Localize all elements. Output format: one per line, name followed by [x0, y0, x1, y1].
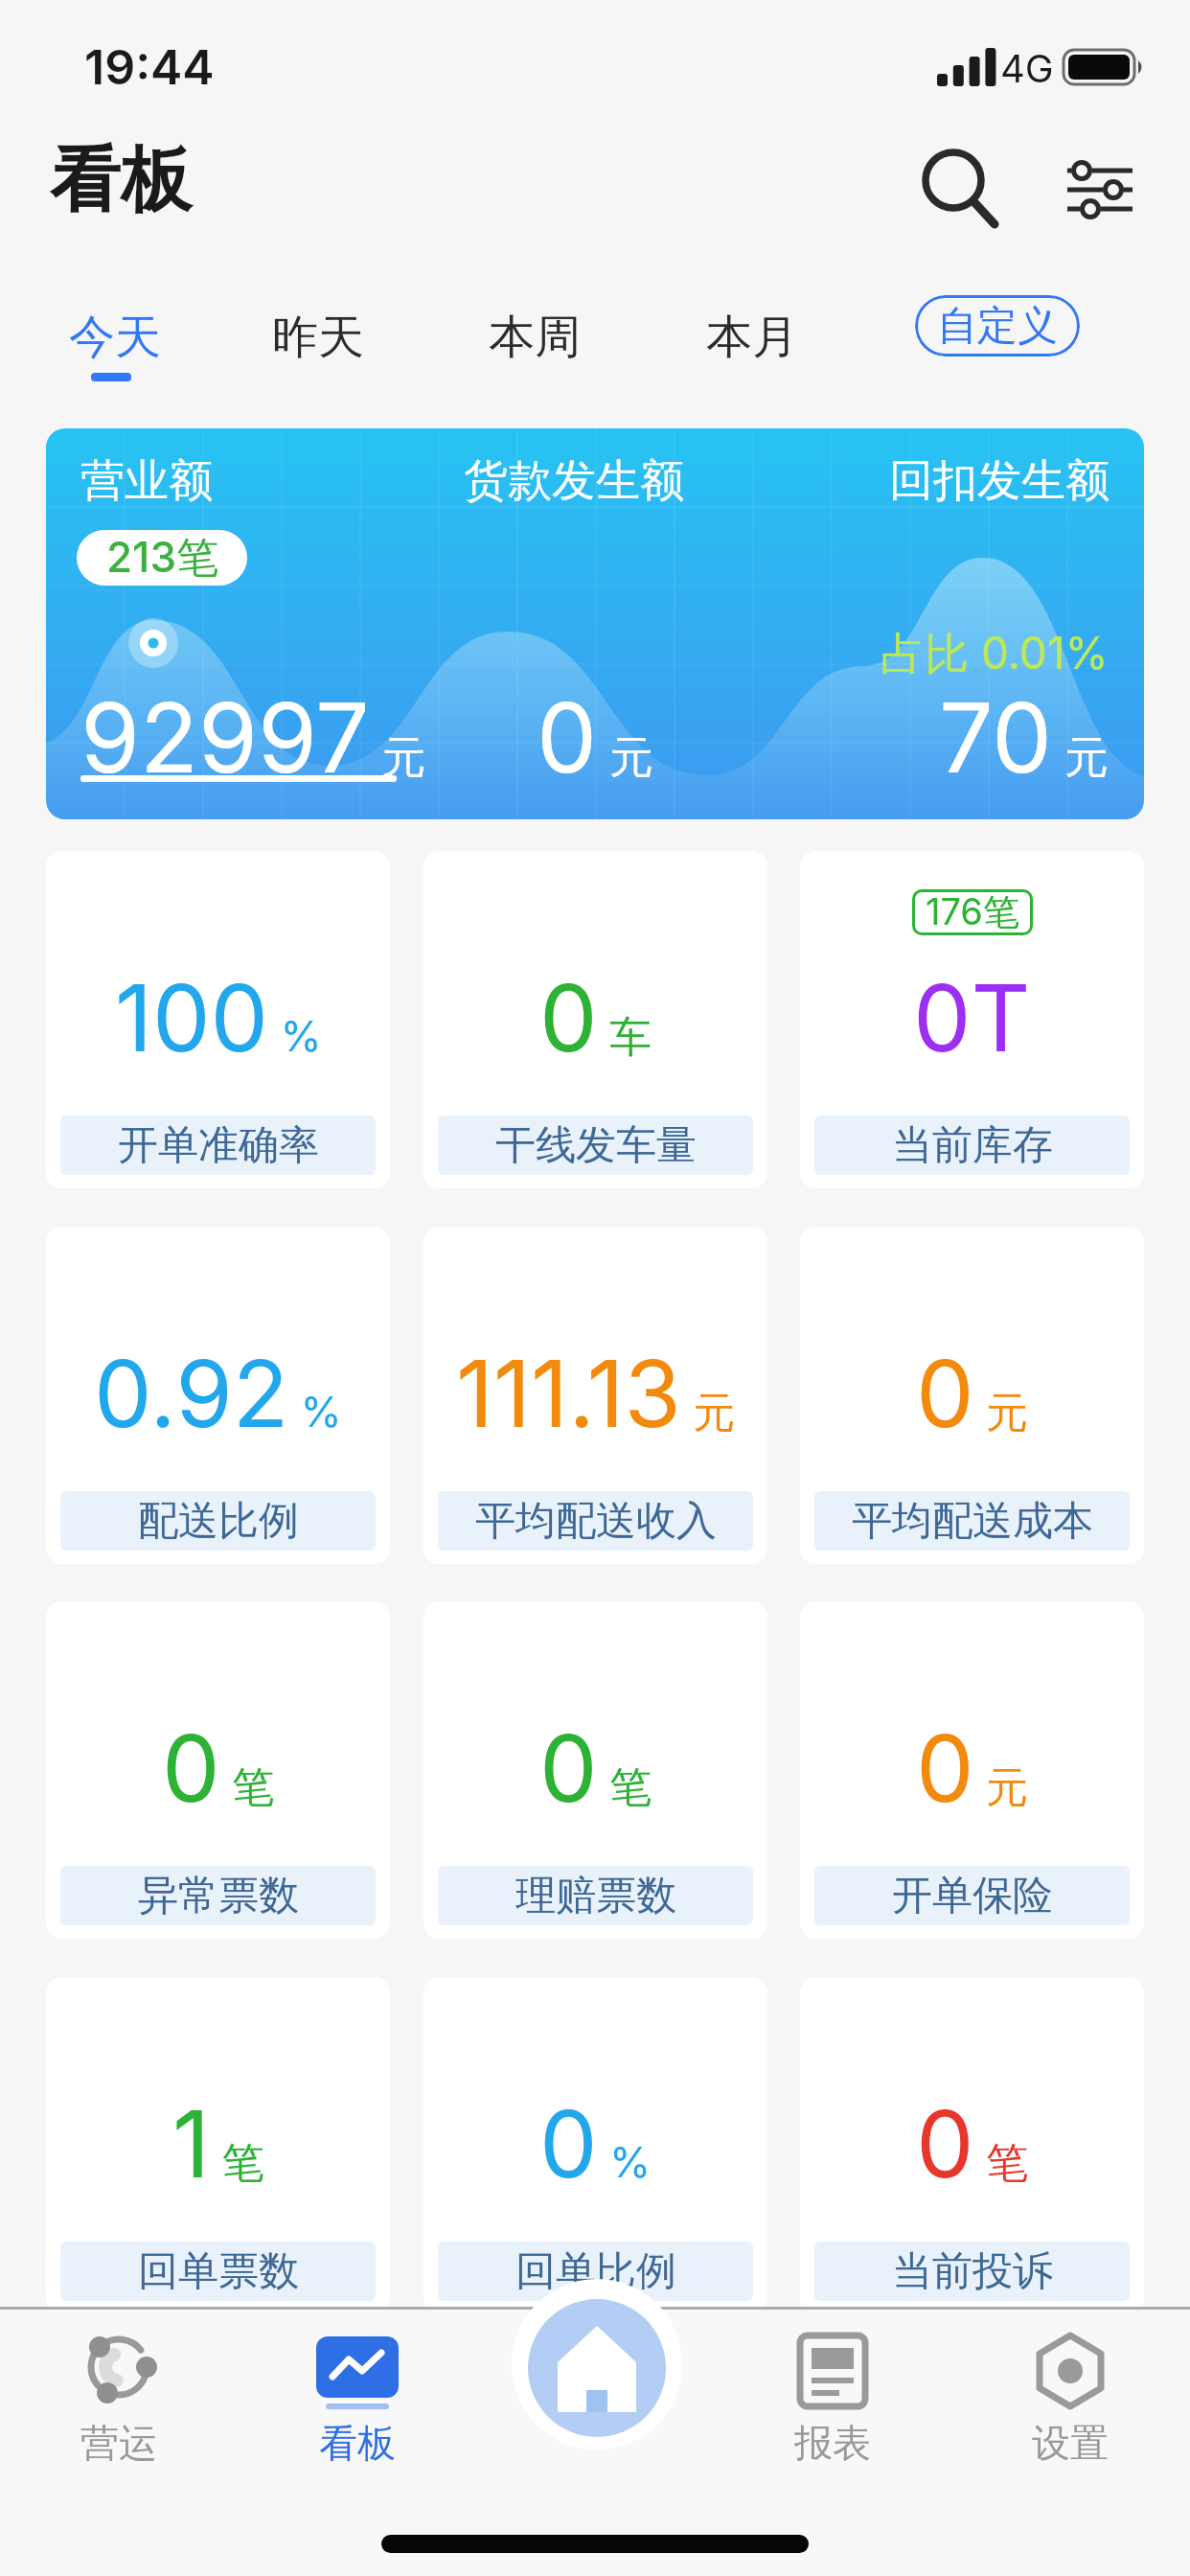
- button[interactable]: [528, 2299, 666, 2437]
- staticText: 92997 元: [80, 679, 426, 795]
- button[interactable]: 1 笔: [46, 1977, 390, 2314]
- button[interactable]: 0 车: [423, 851, 767, 1188]
- staticText: 干线发车量: [495, 1120, 697, 1171]
- button[interactable]: [918, 142, 1006, 234]
- button[interactable]: 0 笔: [46, 1601, 390, 1939]
- staticText: 报表: [794, 2419, 871, 2467]
- staticText: 设置: [1032, 2419, 1109, 2467]
- staticText: 回单票数: [138, 2246, 299, 2297]
- button[interactable]: 看板: [298, 2319, 417, 2472]
- staticText: 0 元: [537, 679, 654, 795]
- staticText: 0 元: [916, 1713, 1028, 1824]
- staticText: 看板: [50, 136, 192, 225]
- button[interactable]: 本月: [0, 0, 92, 57]
- staticText: 占比 0.01%: [881, 626, 1109, 681]
- button[interactable]: 100 %: [46, 851, 390, 1188]
- staticText: 营运: [80, 2419, 157, 2467]
- button[interactable]: 设置: [1011, 2319, 1130, 2472]
- staticText: 1 笔: [172, 2088, 264, 2199]
- staticText: 0 %: [539, 2088, 652, 2199]
- button[interactable]: 自定义: [915, 295, 1080, 356]
- staticText: 配送比例: [138, 1496, 299, 1547]
- staticText: 176笔: [926, 889, 1019, 935]
- button[interactable]: 今天: [0, 0, 92, 57]
- button[interactable]: 0 元: [800, 1227, 1144, 1564]
- button[interactable]: 111.13 元: [423, 1227, 767, 1564]
- staticText: 4G: [1000, 45, 1054, 91]
- button[interactable]: 本周: [0, 0, 92, 57]
- button[interactable]: 昨天: [0, 0, 92, 57]
- staticText: 营业额: [80, 453, 213, 509]
- staticText: 19:44: [84, 38, 215, 96]
- staticText: 0T: [913, 962, 1031, 1073]
- button[interactable]: 0 笔: [800, 1977, 1144, 2314]
- staticText: 0 笔: [539, 1713, 652, 1824]
- staticText: 回单比例: [515, 2246, 676, 2297]
- button[interactable]: 0 元: [800, 1601, 1144, 1939]
- staticText: 平均配送收入: [475, 1496, 717, 1547]
- button[interactable]: 报表: [773, 2319, 892, 2472]
- staticText: 货款发生额: [46, 453, 1123, 509]
- staticText: 开单保险: [892, 1871, 1053, 1921]
- staticText: 0 笔: [162, 1713, 274, 1824]
- button[interactable]: 0 %: [423, 1977, 767, 2314]
- staticText: 0 笔: [916, 2088, 1028, 2199]
- staticText: 0 车: [539, 962, 652, 1073]
- staticText: 看板: [319, 2419, 396, 2467]
- button[interactable]: 0.92 %: [46, 1227, 390, 1564]
- staticText: 理赔票数: [515, 1871, 676, 1921]
- staticText: 0.92 %: [94, 1338, 342, 1449]
- staticText: 当前投诉: [892, 2246, 1053, 2297]
- button[interactable]: 营运: [59, 2319, 178, 2472]
- staticText: 111.13 元: [456, 1338, 736, 1449]
- staticText: 回扣发生额: [889, 453, 1110, 509]
- staticText: 213笔: [106, 531, 218, 585]
- staticText: 异常票数: [138, 1871, 299, 1921]
- staticText: 当前库存: [892, 1120, 1053, 1171]
- button[interactable]: [1065, 140, 1136, 228]
- staticText: 100 %: [115, 962, 322, 1073]
- staticText: 70 元: [939, 679, 1110, 795]
- staticText: 平均配送成本: [852, 1496, 1093, 1547]
- staticText: 自定义: [937, 301, 1058, 352]
- button[interactable]: 0 笔: [423, 1601, 767, 1939]
- button[interactable]: 营业额: [46, 428, 1144, 819]
- button[interactable]: 0T: [800, 851, 1144, 1188]
- staticText: 开单准确率: [118, 1120, 319, 1171]
- staticText: 0 元: [916, 1338, 1028, 1449]
